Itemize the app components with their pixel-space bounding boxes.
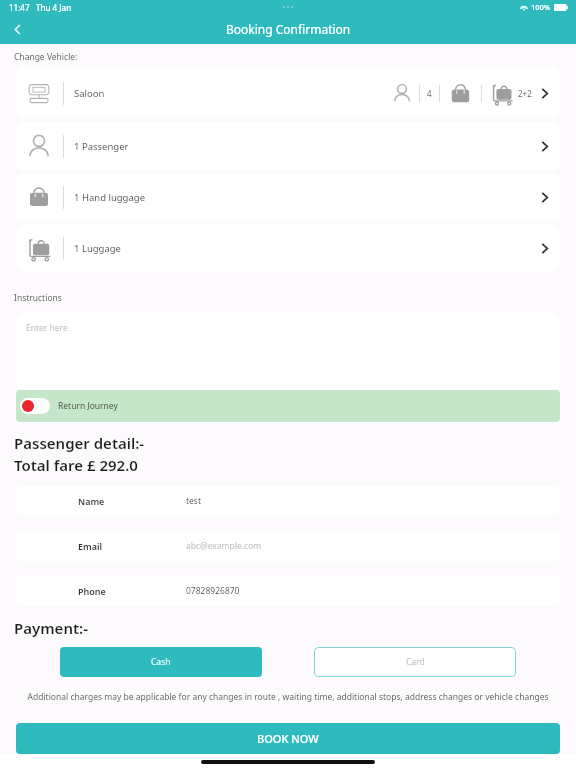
staticText: abc@example.com [186, 540, 262, 552]
staticText: 2+2 [518, 88, 532, 99]
staticText: Cash [151, 656, 171, 668]
staticText: 4 [427, 88, 432, 99]
staticText: Payment:- [14, 618, 88, 638]
staticText: 1 Passenger [74, 140, 129, 153]
button[interactable]: 1 Passenger [16, 122, 560, 170]
staticText: Phone [78, 585, 106, 597]
button[interactable]: Name [16, 486, 560, 516]
staticText: 100% [531, 2, 551, 12]
button[interactable]: 1 Hand luggage [16, 173, 560, 221]
staticText: Booking Confirmation [226, 21, 351, 37]
staticText: Email [78, 540, 103, 552]
button[interactable]: Phone [16, 576, 560, 606]
staticText: Passenger detail:- [14, 433, 145, 453]
staticText: Total fare £ 292.0 [14, 455, 138, 475]
staticText: Enter here [26, 322, 68, 334]
button[interactable]: Card [314, 647, 516, 677]
staticText: 07828926870 [186, 585, 240, 597]
staticText: Thu 4 Jan [36, 2, 72, 13]
staticText: 11:47 [9, 2, 30, 13]
button[interactable]: Saloon [16, 67, 560, 119]
button[interactable]: Back [0, 14, 34, 44]
staticText: Name [78, 495, 105, 507]
button[interactable]: Return Journey [16, 390, 560, 422]
staticText: Instructions [14, 292, 62, 304]
button[interactable]: 1 Luggage [16, 224, 560, 272]
staticText: Return Journey [58, 400, 118, 412]
button[interactable]: Email [16, 531, 560, 561]
staticText: test [186, 495, 202, 507]
button[interactable]: Cash [60, 647, 262, 677]
staticText: Additional charges may be applicable for… [20, 691, 556, 703]
staticText: Saloon [74, 87, 105, 100]
staticText: 1 Luggage [74, 242, 121, 255]
staticText: BOOK NOW [257, 731, 319, 746]
staticText: 1 Hand luggage [74, 191, 145, 204]
button[interactable]: BOOK NOW [16, 723, 560, 754]
staticText: Change Vehicle: [14, 51, 78, 63]
staticText: Card [406, 656, 425, 668]
